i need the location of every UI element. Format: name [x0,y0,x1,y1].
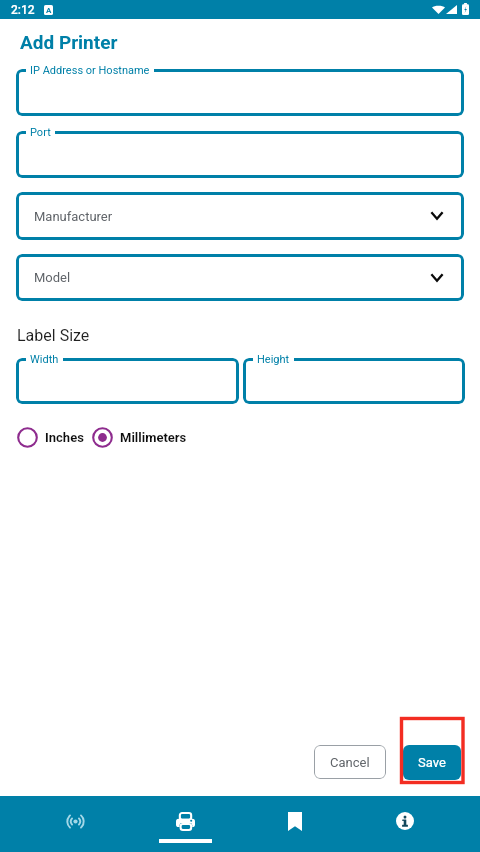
staticText: Model [34,270,71,285]
button[interactable]: Manufacturer [16,192,464,240]
button[interactable] [16,69,464,116]
staticText: Inches [45,430,84,445]
button[interactable] [243,358,465,404]
staticText: 2:12 [11,3,35,17]
button[interactable]: Discover printers [20,796,130,852]
button[interactable]: Model [16,254,464,301]
button[interactable]: Printers [130,796,240,852]
staticText: Millimeters [120,430,187,445]
staticText: Port [30,126,51,139]
staticText: Save [418,755,446,770]
button[interactable]: Save [403,745,461,780]
staticText: IP Address or Hostname [30,64,150,77]
button[interactable]: Info [350,796,460,852]
button[interactable] [16,358,239,404]
button[interactable] [16,131,464,178]
staticText: Add Printer [20,31,118,53]
staticText: Label Size [17,326,90,345]
staticText: Cancel [330,755,370,770]
button[interactable]: Inches [17,427,84,448]
staticText: Height [257,353,290,366]
button[interactable]: Cancel [314,745,386,779]
staticText: Manufacturer [34,209,113,224]
staticText: A [46,6,52,15]
button[interactable]: Saved [240,796,350,852]
staticText: Width [30,353,59,366]
button[interactable]: Millimeters [92,427,187,448]
